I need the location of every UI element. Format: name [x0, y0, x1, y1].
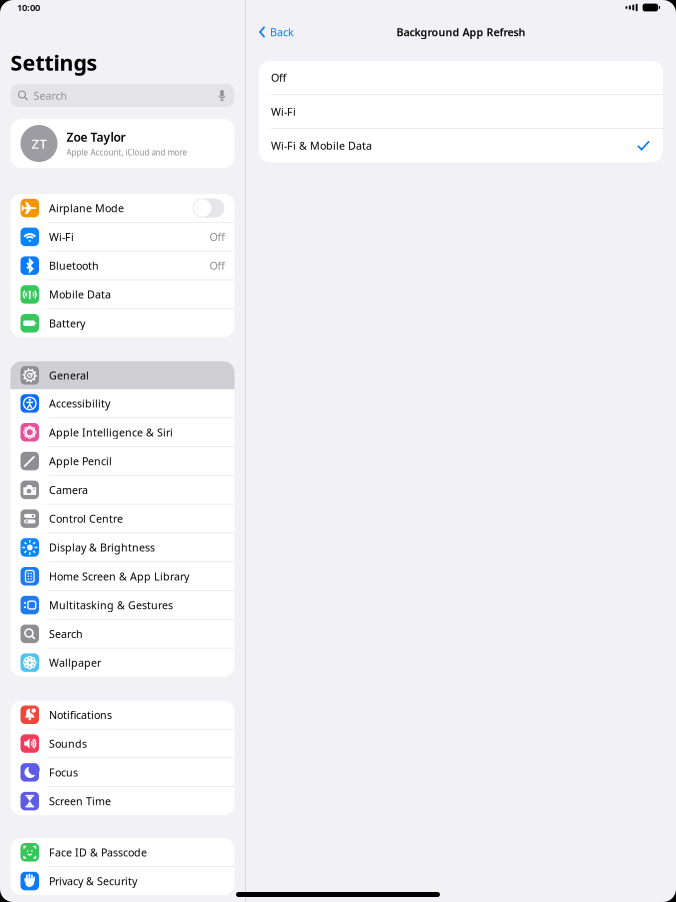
- staticText: Control Centre: [49, 512, 123, 526]
- button[interactable]: Sounds: [10, 729, 234, 758]
- staticText: Display & Brightness: [49, 540, 155, 555]
- staticText: Mobile Data: [49, 287, 111, 302]
- staticText: Camera: [49, 483, 88, 497]
- button[interactable]: Accessibility: [10, 389, 234, 417]
- staticText: Bluetooth: [49, 259, 99, 273]
- button[interactable]: Multitasking & Gestures: [10, 591, 234, 619]
- button[interactable]: Wi-Fi: [10, 223, 234, 251]
- staticText: Off: [209, 259, 224, 273]
- button[interactable]: Notifications: [10, 701, 234, 729]
- staticText: Search: [49, 627, 83, 641]
- button[interactable]: Screen Time: [10, 787, 234, 815]
- button[interactable]: Focus: [10, 758, 234, 786]
- staticText: Apple Pencil: [49, 454, 112, 468]
- staticText: 10:00: [17, 1, 40, 14]
- button[interactable]: Apple Pencil: [10, 447, 234, 475]
- button[interactable]: Wallpaper: [10, 649, 234, 677]
- button[interactable]: Airplane Mode: [10, 194, 234, 222]
- staticText: Off: [271, 71, 286, 85]
- staticText: Off: [209, 230, 224, 244]
- staticText: Notifications: [49, 708, 112, 722]
- staticText: Apple Account, iCloud and more: [66, 147, 187, 158]
- button[interactable]: Privacy & Security: [10, 867, 234, 895]
- staticText: Apple Intelligence & Siri: [49, 425, 173, 439]
- button[interactable]: Home Screen & App Library: [10, 562, 234, 590]
- button[interactable]: ZT: [10, 119, 234, 168]
- button[interactable]: Back: [246, 20, 302, 44]
- staticText: ZT: [31, 135, 46, 152]
- staticText: Back: [270, 25, 294, 39]
- button[interactable]: Bluetooth: [10, 252, 234, 280]
- button[interactable]: Display & Brightness: [10, 533, 234, 561]
- staticText: Screen Time: [49, 794, 111, 808]
- staticText: Wallpaper: [49, 656, 101, 670]
- staticText: General: [49, 368, 89, 382]
- staticText: Privacy & Security: [49, 874, 137, 888]
- button[interactable]: Camera: [10, 476, 234, 504]
- button[interactable]: Control Centre: [10, 505, 234, 533]
- staticText: Home Screen & App Library: [49, 569, 189, 583]
- staticText: Search: [33, 88, 67, 103]
- staticText: Wi-Fi: [271, 105, 296, 119]
- staticText: Wi-Fi: [49, 230, 74, 244]
- button[interactable]: Battery: [10, 309, 234, 337]
- button[interactable]: Wi-Fi: [259, 95, 663, 128]
- staticText: Accessibility: [49, 396, 110, 411]
- staticText: Airplane Mode: [49, 201, 124, 215]
- button[interactable]: General: [10, 361, 234, 389]
- button[interactable]: Face ID & Passcode: [10, 838, 234, 866]
- staticText: Multitasking & Gestures: [49, 598, 173, 612]
- button[interactable]: Mobile Data: [10, 280, 234, 308]
- button[interactable]: Search: [10, 620, 234, 648]
- staticText: Zoe Taylor: [66, 129, 125, 145]
- staticText: Battery: [49, 316, 85, 330]
- button[interactable]: Apple Intelligence & Siri: [10, 418, 234, 446]
- staticText: Sounds: [49, 736, 87, 751]
- staticText: Face ID & Passcode: [49, 845, 147, 859]
- staticText: Wi-Fi & Mobile Data: [271, 139, 372, 153]
- staticText: Focus: [49, 765, 78, 779]
- staticText: Settings: [10, 48, 97, 77]
- staticText: Background App Refresh: [396, 25, 525, 39]
- button[interactable]: Off: [259, 61, 663, 94]
- button[interactable]: Wi-Fi & Mobile Data: [259, 129, 663, 162]
